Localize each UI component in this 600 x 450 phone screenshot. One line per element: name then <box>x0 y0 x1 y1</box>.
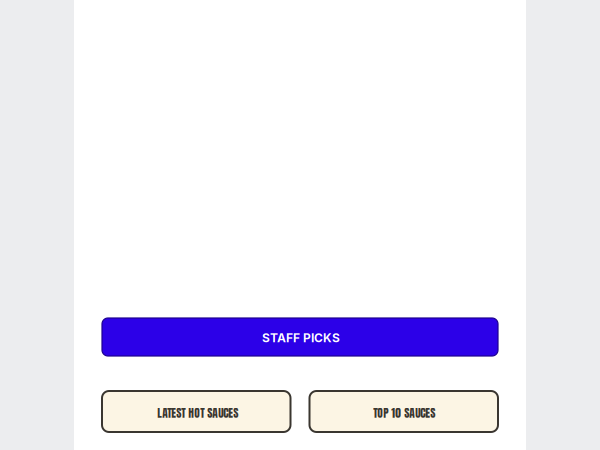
button[interactable]: STAFF PICKS <box>102 318 498 356</box>
button[interactable]: TOP 10 SAUCES <box>309 391 498 432</box>
staticText: STAFF PICKS <box>262 331 340 345</box>
staticText: LATEST HOT SAUCES <box>157 404 238 422</box>
button[interactable]: LATEST HOT SAUCES <box>102 391 290 432</box>
staticText: TOP 10 SAUCES <box>373 404 435 422</box>
